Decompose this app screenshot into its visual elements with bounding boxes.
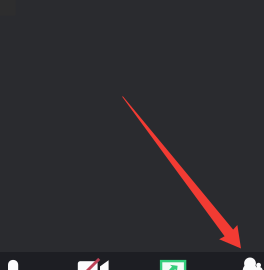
button[interactable]: Share Screen [0, 0, 264, 270]
button[interactable]: Participants [0, 0, 264, 270]
button[interactable]: Mute [0, 0, 264, 270]
button[interactable]: Start Video [0, 0, 264, 270]
